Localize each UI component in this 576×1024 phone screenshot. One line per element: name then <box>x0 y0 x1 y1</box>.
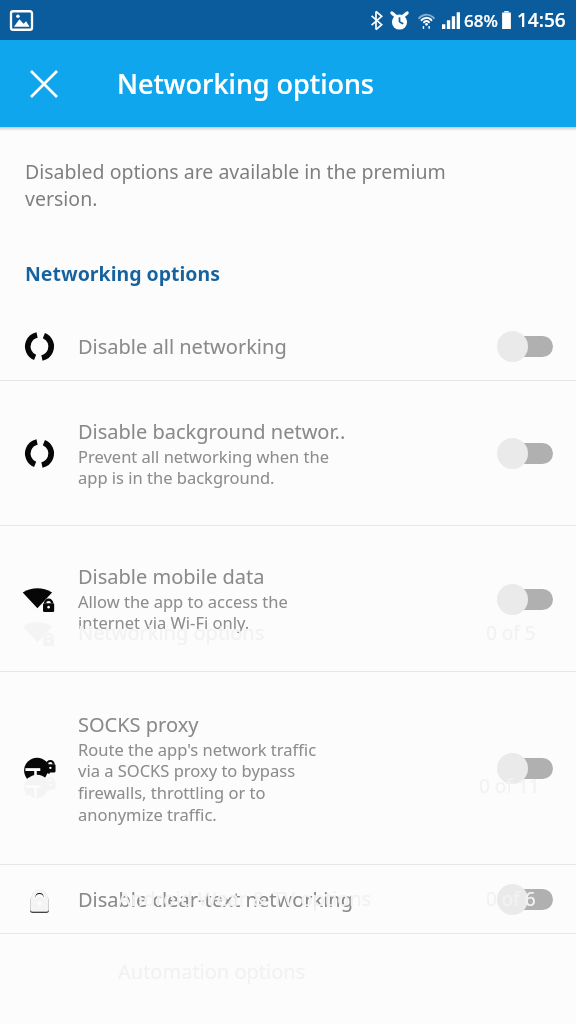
staticText: 14:56 <box>517 7 566 33</box>
staticText: 0 of 6 <box>486 886 536 912</box>
staticText: Disable background networ.. <box>78 418 346 445</box>
staticText: Disable mobile data <box>78 563 265 590</box>
staticText: 0 of 11 <box>479 773 540 799</box>
button[interactable]: Disable background networ.. <box>497 436 555 470</box>
button[interactable]: Disable mobile data <box>0 526 576 671</box>
button[interactable]: SOCKS proxy <box>0 672 576 864</box>
staticText: Networking options <box>25 260 221 287</box>
button[interactable]: Disable all networking <box>0 312 576 380</box>
staticText: Disable all networking <box>78 333 287 360</box>
button[interactable]: Close <box>20 60 68 108</box>
staticText: 68% <box>464 9 498 32</box>
button[interactable]: Disable clear-text networking <box>497 882 555 916</box>
button[interactable]: Disable mobile data <box>497 582 555 616</box>
button[interactable]: Disable background networ.. <box>0 381 576 525</box>
staticText: Route the app's network traffic via a SO… <box>78 738 317 826</box>
staticText: Prevent all networking when the app is i… <box>78 445 329 489</box>
staticText: Disable clear-text networking <box>78 886 353 913</box>
staticText: Allow the app to access the internet via… <box>78 590 288 634</box>
staticText: Disabled options are available in the pr… <box>25 158 506 212</box>
staticText: Networking options <box>78 619 265 646</box>
staticText: SOCKS proxy <box>78 711 199 738</box>
staticText: Networking options <box>117 65 374 102</box>
button[interactable]: SOCKS proxy <box>497 751 555 785</box>
staticText: Android Wear & TV options <box>118 885 372 912</box>
button[interactable]: Disable all networking <box>497 329 555 363</box>
staticText: 0 of 5 <box>486 620 536 646</box>
staticText: Automation options <box>118 958 306 985</box>
button[interactable]: Disable clear-text networking <box>0 865 576 933</box>
